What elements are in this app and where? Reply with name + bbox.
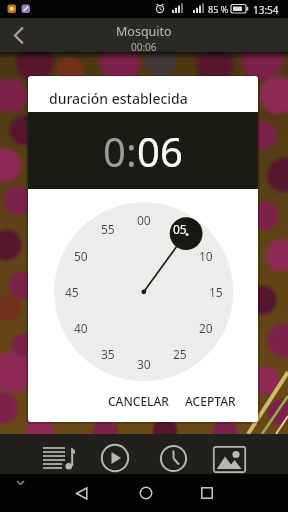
staticText: CANCELAR bbox=[108, 393, 169, 409]
button[interactable] bbox=[0, 18, 38, 52]
staticText: 15 bbox=[209, 284, 223, 300]
staticText: : bbox=[126, 124, 137, 178]
staticText: 13:54 bbox=[253, 3, 279, 17]
button[interactable] bbox=[156, 442, 190, 474]
staticText: 85 % bbox=[208, 3, 229, 15]
staticText: 45 bbox=[65, 284, 79, 300]
staticText: duración establecida bbox=[49, 89, 188, 108]
button[interactable] bbox=[97, 442, 132, 474]
button[interactable] bbox=[212, 443, 247, 475]
staticText: 35 bbox=[101, 346, 115, 362]
staticText: 05 bbox=[173, 221, 187, 237]
staticText: 55 bbox=[101, 221, 115, 237]
staticText: ACEPTAR bbox=[185, 393, 236, 409]
staticText: 06 bbox=[137, 124, 183, 178]
staticText: 30 bbox=[137, 356, 151, 372]
staticText: 40 bbox=[74, 320, 88, 336]
button[interactable]: ACEPTAR bbox=[179, 387, 242, 415]
button[interactable] bbox=[126, 474, 166, 512]
button[interactable] bbox=[187, 474, 227, 512]
staticText: 00:06 bbox=[131, 40, 157, 52]
staticText: 10 bbox=[199, 248, 213, 264]
button[interactable] bbox=[61, 474, 101, 512]
button[interactable]: CANCELAR bbox=[102, 387, 175, 415]
staticText: 25 bbox=[173, 346, 187, 362]
staticText: 0 bbox=[103, 124, 126, 178]
staticText: 00 bbox=[137, 212, 151, 228]
staticText: 20 bbox=[199, 320, 213, 336]
staticText: Mosquito bbox=[116, 23, 172, 40]
button[interactable] bbox=[40, 443, 76, 473]
staticText: 50 bbox=[74, 248, 88, 264]
